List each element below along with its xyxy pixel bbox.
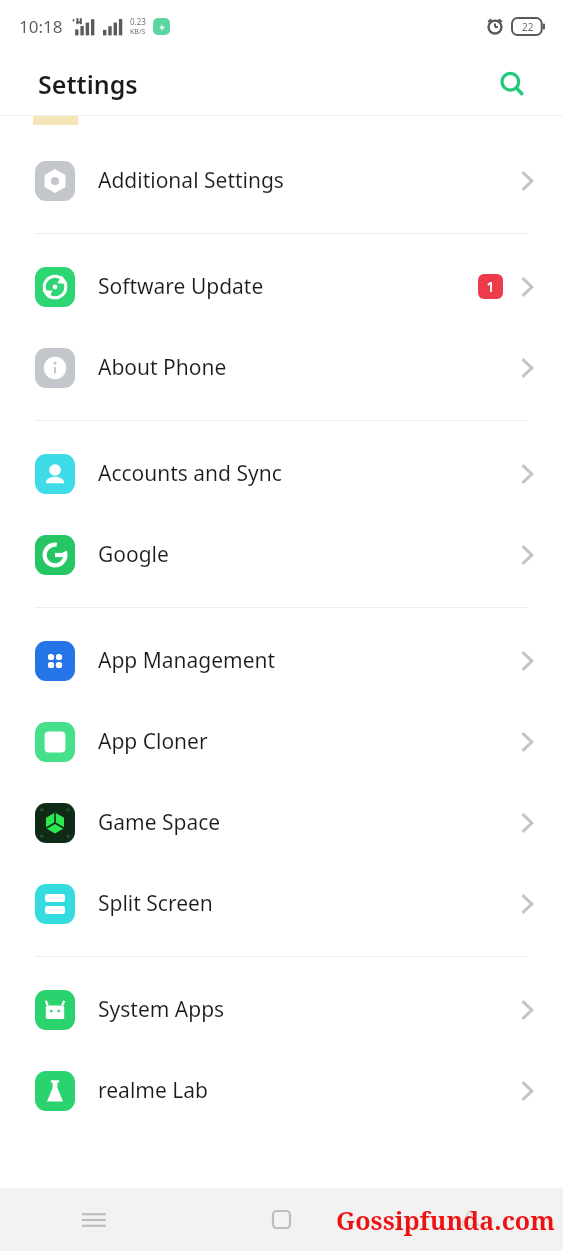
- staticText: realme Lab: [98, 1076, 519, 1105]
- button[interactable]: System Apps: [0, 969, 563, 1050]
- staticText: Google: [98, 540, 519, 569]
- button[interactable]: Back: [375, 1188, 563, 1251]
- staticText: KB/S: [130, 27, 146, 37]
- staticText: 1: [486, 277, 495, 296]
- staticText: 0.23: [130, 16, 146, 27]
- staticText: Additional Settings: [98, 166, 519, 195]
- staticText: Accounts and Sync: [98, 459, 519, 488]
- button[interactable]: About Phone: [0, 327, 563, 408]
- staticText: Settings: [38, 67, 138, 101]
- button[interactable]: realme Lab: [0, 1050, 563, 1131]
- staticText: App Management: [98, 646, 519, 675]
- staticText: 10:18: [19, 15, 63, 38]
- button[interactable]: Accounts and Sync: [0, 433, 563, 514]
- button[interactable]: Search: [489, 61, 535, 107]
- button[interactable]: Game Space: [0, 782, 563, 863]
- staticText: Gossipfunda.com: [336, 1203, 555, 1237]
- button[interactable]: Recent apps: [0, 1188, 187, 1251]
- button[interactable]: App Cloner: [0, 701, 563, 782]
- button[interactable]: Additional Settings: [0, 140, 563, 221]
- button[interactable]: App Management: [0, 620, 563, 701]
- button[interactable]: Home: [187, 1188, 375, 1251]
- button[interactable]: Split Screen: [0, 863, 563, 944]
- button[interactable]: Google: [0, 514, 563, 595]
- staticText: About Phone: [98, 353, 519, 382]
- staticText: System Apps: [98, 995, 519, 1024]
- button[interactable]: Software Update: [0, 246, 563, 327]
- staticText: Split Screen: [98, 889, 519, 918]
- staticText: App Cloner: [98, 727, 519, 756]
- staticText: 22: [522, 20, 534, 34]
- staticText: Software Update: [98, 272, 478, 301]
- staticText: Game Space: [98, 808, 519, 837]
